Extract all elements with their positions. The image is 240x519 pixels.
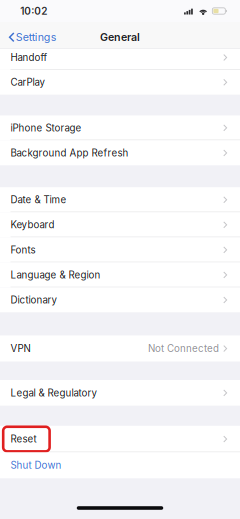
button[interactable]: Keyboard	[0, 212, 240, 237]
staticText: Shut Down	[10, 459, 61, 471]
staticText: Handoff	[10, 52, 47, 63]
staticText: 10:02	[20, 5, 47, 17]
staticText: Background App Refresh	[10, 147, 128, 159]
staticText: Dictionary	[10, 294, 56, 306]
button[interactable]: Handoff	[0, 49, 240, 70]
staticText: Reset	[10, 433, 36, 445]
staticText: Keyboard	[10, 219, 54, 231]
staticText: Fonts	[10, 244, 35, 256]
button[interactable]: Dictionary	[0, 287, 240, 313]
staticText: CarPlay	[10, 76, 44, 88]
button[interactable]: Language & Region	[0, 262, 240, 287]
staticText: Settings	[16, 31, 57, 44]
button[interactable]: VPN	[0, 335, 240, 362]
button[interactable]: iPhone Storage	[0, 115, 240, 140]
staticText: Not Connected	[148, 343, 219, 354]
button[interactable]: Fonts	[0, 237, 240, 262]
staticText: VPN	[10, 343, 30, 354]
staticText: iPhone Storage	[10, 122, 81, 134]
button[interactable]: Background App Refresh	[0, 140, 240, 166]
button[interactable]: Date & Time	[0, 187, 240, 212]
staticText: Legal & Regulatory	[10, 387, 96, 399]
button[interactable]: Reset	[0, 426, 240, 452]
button[interactable]: Shut Down	[0, 452, 240, 478]
button[interactable]: Legal & Regulatory	[0, 380, 240, 406]
staticText: Language & Region	[10, 269, 100, 281]
button[interactable]: CarPlay	[0, 70, 240, 95]
button[interactable]: Settings	[0, 24, 63, 47]
staticText: Date & Time	[10, 194, 66, 206]
staticText: General	[100, 31, 140, 44]
